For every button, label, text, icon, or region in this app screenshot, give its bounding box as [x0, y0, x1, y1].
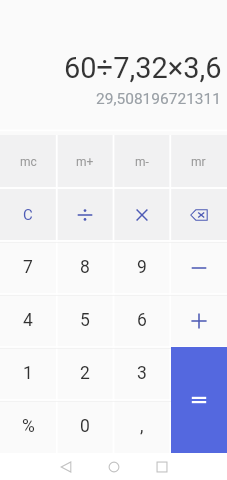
staticText: 60÷7,32×3,6	[64, 51, 222, 85]
button[interactable]: 8	[56, 241, 113, 294]
button[interactable]: 6	[113, 294, 170, 347]
button[interactable]: 2	[56, 347, 113, 400]
staticText: 7	[23, 257, 33, 278]
button[interactable]: C	[0, 188, 56, 241]
staticText: 9	[137, 257, 147, 278]
staticText: mr	[191, 155, 206, 169]
staticText: 3	[137, 363, 147, 384]
staticText: m-	[135, 155, 149, 169]
button[interactable]: plus	[170, 294, 227, 347]
button[interactable]: ,	[113, 400, 170, 453]
button[interactable]: minus	[170, 241, 227, 294]
button[interactable]: Home	[99, 453, 129, 480]
button[interactable]: 7	[0, 241, 56, 294]
button[interactable]: m+	[56, 135, 113, 188]
button[interactable]: 4	[0, 294, 56, 347]
staticText: mc	[20, 155, 37, 169]
staticText: 2	[80, 363, 90, 384]
button[interactable]: multiply	[113, 188, 170, 241]
staticText: m+	[76, 155, 94, 169]
button[interactable]: equals	[171, 347, 227, 453]
staticText: 5	[80, 310, 90, 331]
staticText: 29,508196721311	[96, 90, 222, 108]
staticText: 6	[137, 310, 147, 331]
button[interactable]: 9	[113, 241, 170, 294]
button[interactable]: mc	[0, 135, 56, 188]
button[interactable]: backspace	[170, 188, 227, 241]
button[interactable]: Recent apps	[147, 453, 177, 480]
button[interactable]: mr	[170, 135, 227, 188]
staticText: 0	[80, 416, 90, 437]
button[interactable]: Back	[51, 453, 81, 480]
staticText: 4	[23, 310, 33, 331]
button[interactable]: 5	[56, 294, 113, 347]
staticText: ,	[140, 416, 144, 437]
staticText: 1	[23, 363, 33, 384]
staticText: 8	[80, 257, 90, 278]
button[interactable]: 1	[0, 347, 56, 400]
button[interactable]: 0	[56, 400, 113, 453]
button[interactable]: %	[0, 400, 56, 453]
button[interactable]: 3	[113, 347, 170, 400]
staticText: %	[22, 416, 35, 437]
button[interactable]: m-	[113, 135, 170, 188]
button[interactable]: divide	[56, 188, 113, 241]
staticText: C	[23, 206, 33, 224]
